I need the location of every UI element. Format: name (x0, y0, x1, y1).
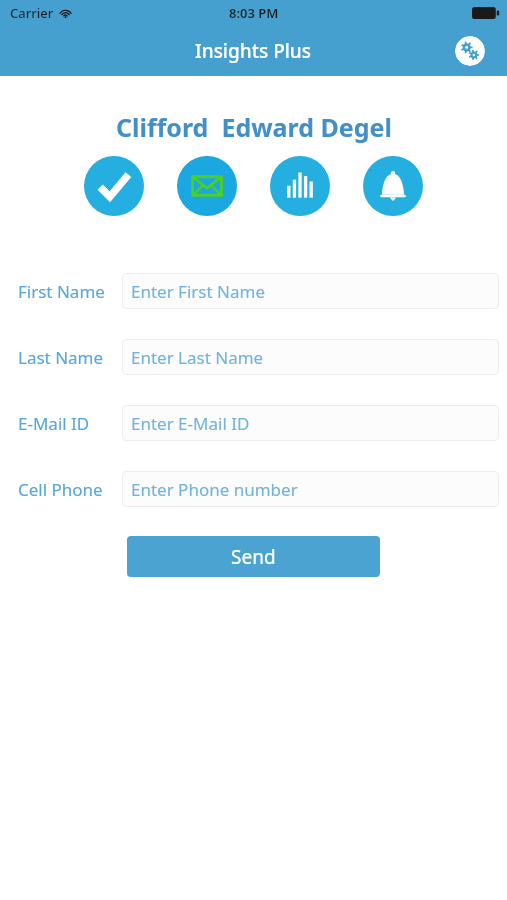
staticText: 8:03 PM (229, 4, 279, 22)
button[interactable]: Enter Phone number (122, 471, 499, 507)
staticText: Enter First Name (131, 280, 265, 303)
staticText: Last Name (18, 346, 104, 369)
staticText: First Name (18, 280, 105, 303)
button[interactable]: Enter Last Name (122, 339, 499, 375)
staticText: Enter E-Mail ID (131, 412, 250, 435)
button[interactable]: Enter E-Mail ID (122, 405, 499, 441)
staticText: Carrier (10, 4, 54, 22)
button[interactable]: Messages (177, 156, 237, 216)
staticText: Enter Last Name (131, 346, 264, 369)
staticText: Clifford Edward Degel (116, 110, 392, 144)
staticText: Enter Phone number (131, 478, 298, 501)
button[interactable]: Enter First Name (122, 273, 499, 309)
staticText: Send (231, 544, 276, 570)
staticText: Insights Plus (195, 38, 312, 64)
button[interactable]: Verified (84, 156, 144, 216)
button[interactable]: Notifications (363, 156, 423, 216)
staticText: E-Mail ID (18, 412, 90, 435)
button[interactable]: Statistics (270, 156, 330, 216)
button[interactable]: Send (127, 536, 380, 577)
staticText: Cell Phone (18, 478, 103, 501)
button[interactable]: Settings (455, 36, 485, 66)
